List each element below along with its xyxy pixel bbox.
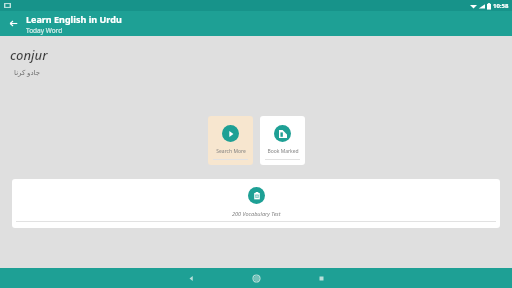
button[interactable]: Back [176, 268, 206, 288]
button[interactable]: Book Marked [260, 116, 305, 165]
button[interactable]: Back [0, 11, 26, 36]
staticText: Learn English in Urdu [26, 13, 122, 25]
staticText: Book Marked [267, 148, 299, 155]
button[interactable]: Home [241, 268, 271, 288]
staticText: Today Word [26, 26, 63, 35]
staticText: 10:58 [493, 2, 509, 10]
button[interactable]: Search More [208, 116, 253, 165]
staticText: 200 Vocabulary Test [232, 210, 281, 217]
staticText: conjur [10, 46, 48, 64]
button[interactable]: 200 Vocabulary Test [12, 179, 500, 228]
button[interactable]: Recent apps [306, 268, 336, 288]
staticText: Search More [216, 148, 246, 155]
staticText: جادو کرنا [14, 68, 41, 78]
